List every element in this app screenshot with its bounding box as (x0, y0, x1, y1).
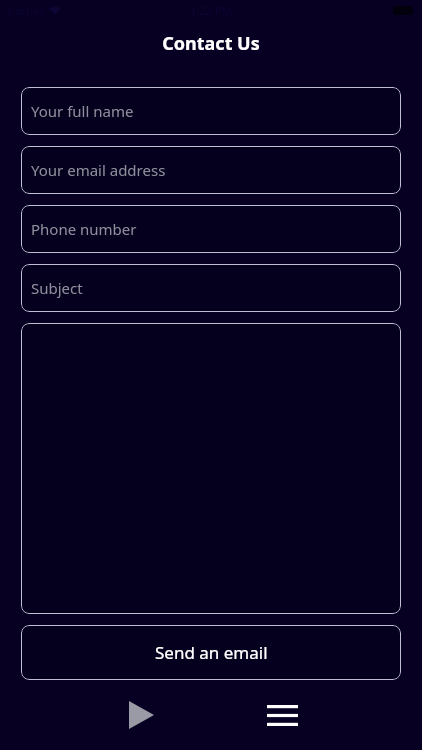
button[interactable]: Phone number (21, 205, 401, 253)
staticText: Contact Us (162, 31, 260, 56)
staticText: Carrier (8, 3, 45, 18)
staticText: Subject (31, 278, 83, 298)
staticText: Phone number (31, 219, 137, 239)
button[interactable]: Play (111, 685, 171, 745)
button[interactable]: Menu (252, 685, 312, 745)
button[interactable]: Your full name (21, 87, 401, 135)
staticText: Send an email (155, 641, 268, 664)
button[interactable]: Your email address (21, 146, 401, 194)
button[interactable]: Subject (21, 264, 401, 312)
staticText: Your full name (31, 101, 134, 121)
button[interactable] (21, 323, 401, 614)
button[interactable]: Send an email (21, 625, 401, 680)
staticText: 1:22 PM (190, 3, 232, 18)
staticText: Your email address (31, 160, 166, 180)
